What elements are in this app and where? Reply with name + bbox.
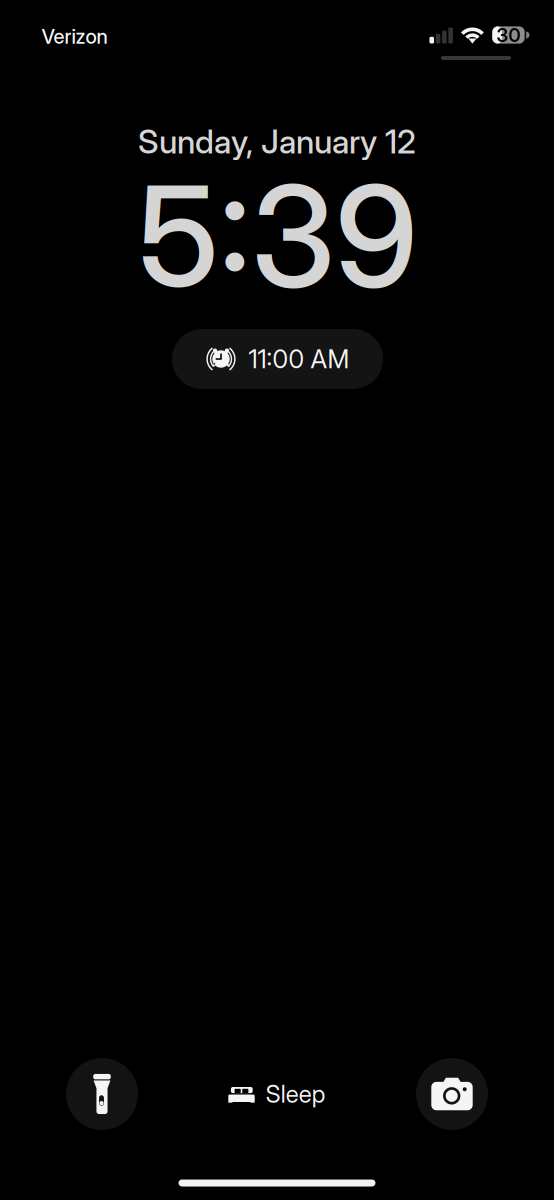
staticText: Sleep [266, 1079, 326, 1108]
button[interactable]: Camera [416, 1058, 488, 1130]
button[interactable]: Flashlight [66, 1058, 138, 1130]
button[interactable]: Sleep [228, 1072, 326, 1116]
staticText: 5:39 [138, 152, 418, 320]
staticText: 11:00 AM [248, 344, 349, 374]
button[interactable]: 11:00 AM [172, 329, 383, 389]
staticText: 30 [496, 23, 520, 46]
staticText: Sunday, January 12 [138, 122, 416, 161]
staticText: Verizon [41, 24, 107, 49]
